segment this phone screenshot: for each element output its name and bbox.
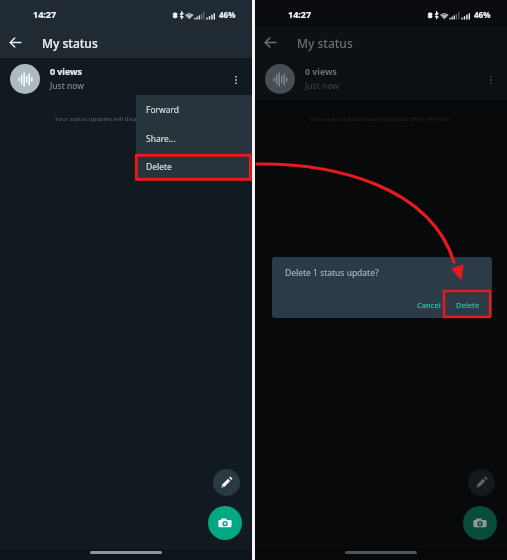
button[interactable]: Back <box>255 27 286 58</box>
staticText: Delete <box>146 161 172 173</box>
staticText: Your status updates will disappear after… <box>255 114 507 122</box>
button[interactable]: More options <box>225 69 247 91</box>
button[interactable]: More options <box>480 69 502 91</box>
staticText: 0 views <box>305 66 337 78</box>
staticText: 46% <box>474 9 491 20</box>
staticText: Your status updates will disappear after… <box>0 114 252 122</box>
staticText: Delete <box>456 300 480 310</box>
button[interactable]: Cancel <box>411 295 447 315</box>
button[interactable]: 0 views <box>0 58 252 100</box>
staticText: 0 views <box>50 66 82 78</box>
button[interactable]: Delete <box>447 295 489 315</box>
button[interactable]: Write status <box>468 469 495 496</box>
staticText: My status <box>297 35 353 51</box>
button[interactable]: Delete <box>136 153 252 181</box>
button[interactable]: 0 views <box>255 58 507 100</box>
staticText: My status <box>42 35 98 51</box>
staticText: Cancel <box>417 300 441 310</box>
staticText: Forward <box>146 104 180 116</box>
button[interactable]: Camera <box>208 506 242 540</box>
staticText: Share... <box>146 133 176 145</box>
staticText: 14:27 <box>33 8 57 20</box>
button[interactable]: Back <box>0 27 31 58</box>
button[interactable]: Forward <box>136 95 252 124</box>
button[interactable]: Write status <box>213 469 240 496</box>
button[interactable]: Share... <box>136 124 252 153</box>
staticText: Just now <box>50 80 84 92</box>
staticText: Delete 1 status update? <box>285 267 379 279</box>
button[interactable]: Camera <box>463 506 497 540</box>
staticText: Just now <box>305 80 339 92</box>
staticText: 46% <box>219 9 236 20</box>
staticText: 14:27 <box>288 8 312 20</box>
